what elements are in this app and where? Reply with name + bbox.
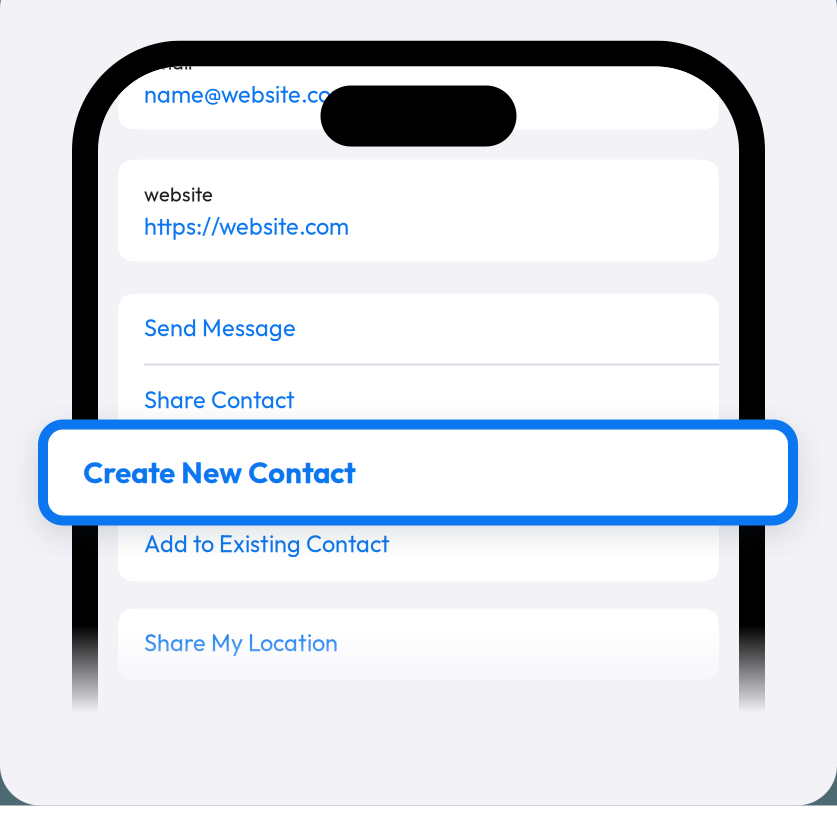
button[interactable]: Create New Contact <box>43 424 793 520</box>
button[interactable]: Add to Existing Contact <box>118 509 719 581</box>
staticText: Share My Location <box>144 628 338 657</box>
button[interactable]: Share Contact <box>118 365 719 437</box>
button[interactable]: email <box>118 27 719 129</box>
staticText: website <box>144 181 213 207</box>
staticText: Create New Contact <box>83 454 356 491</box>
staticText: https://website.com <box>144 211 349 241</box>
staticText: Send Message <box>144 313 296 342</box>
button[interactable]: Share My Location <box>118 608 719 680</box>
staticText: email <box>144 49 192 75</box>
button[interactable]: website <box>118 159 719 261</box>
button[interactable]: Send Message <box>118 293 719 365</box>
staticText: Create New Contact <box>144 457 358 486</box>
staticText: name@website.com <box>144 79 351 109</box>
staticText: Share Contact <box>144 385 295 414</box>
button[interactable]: Create New Contact <box>118 437 719 509</box>
staticText: Add to Existing Contact <box>144 529 390 558</box>
